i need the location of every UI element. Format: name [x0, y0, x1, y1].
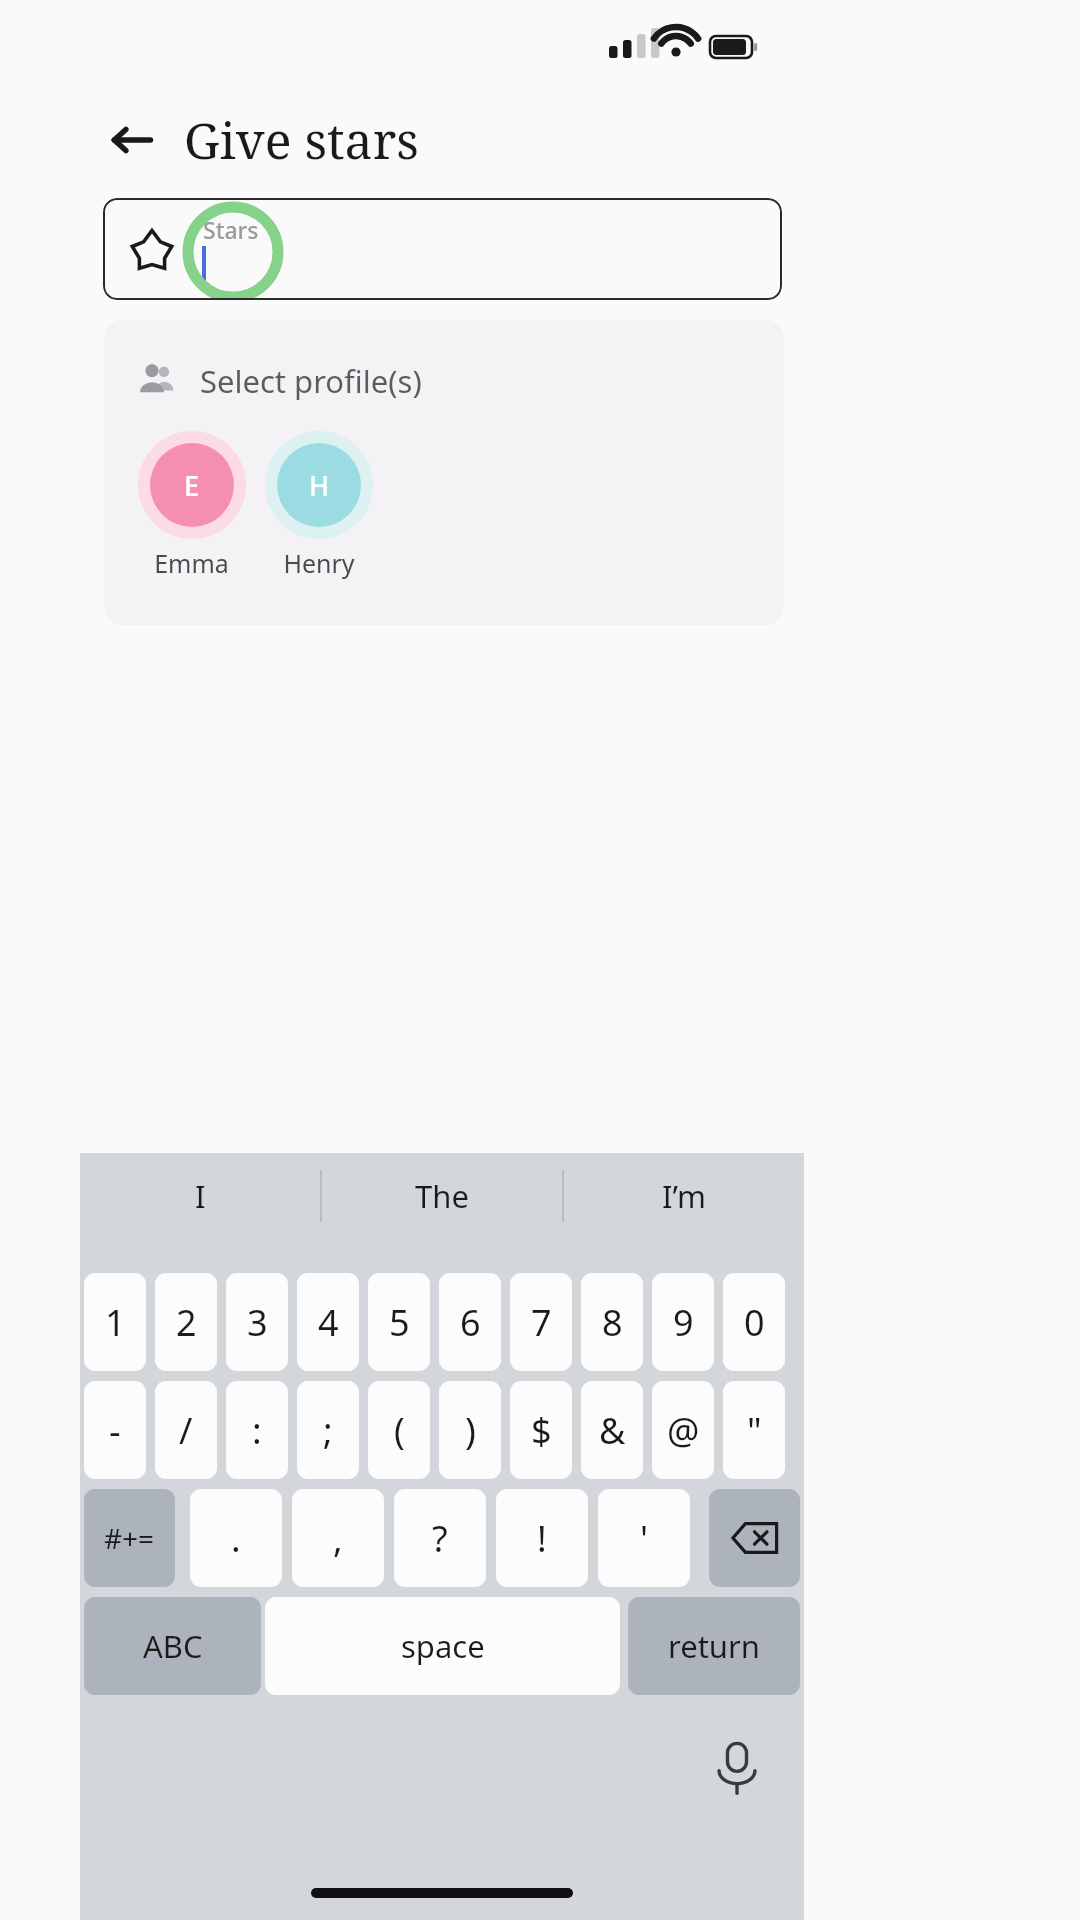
- staticText: Give stars: [184, 106, 419, 174]
- button[interactable]: 2: [155, 1273, 217, 1371]
- staticText: H: [309, 467, 330, 504]
- button[interactable]: return: [628, 1597, 800, 1695]
- button[interactable]: &: [581, 1381, 643, 1479]
- staticText: !: [537, 1514, 547, 1563]
- button[interactable]: E: [128, 426, 255, 580]
- button[interactable]: 5: [368, 1273, 430, 1371]
- staticText: space: [401, 1625, 485, 1667]
- staticText: Stars: [203, 214, 259, 245]
- button[interactable]: (: [368, 1381, 430, 1479]
- button[interactable]: !: [496, 1489, 588, 1587]
- staticText: ,: [333, 1514, 343, 1563]
- button[interactable]: /: [155, 1381, 217, 1479]
- staticText: ): [465, 1406, 476, 1455]
- staticText: 2: [176, 1298, 197, 1347]
- staticText: 9: [673, 1298, 694, 1347]
- button[interactable]: The: [322, 1153, 562, 1238]
- staticText: $: [531, 1406, 552, 1455]
- button[interactable]: 9: [652, 1273, 714, 1371]
- staticText: 5: [389, 1298, 410, 1347]
- button[interactable]: Back: [100, 108, 164, 172]
- staticText: I: [195, 1175, 206, 1217]
- staticText: I’m: [662, 1175, 706, 1217]
- button[interactable]: -: [84, 1381, 146, 1479]
- staticText: ;: [323, 1406, 333, 1455]
- staticText: 1: [105, 1298, 126, 1347]
- staticText: (: [394, 1406, 405, 1455]
- button[interactable]: ABC: [84, 1597, 261, 1695]
- staticText: :: [252, 1406, 262, 1455]
- staticText: The: [415, 1175, 469, 1217]
- button[interactable]: Stars: [103, 198, 782, 300]
- staticText: ABC: [143, 1625, 203, 1667]
- button[interactable]: ": [723, 1381, 785, 1479]
- button[interactable]: Backspace: [709, 1489, 800, 1587]
- staticText: /: [179, 1406, 193, 1455]
- button[interactable]: ,: [292, 1489, 384, 1587]
- staticText: 4: [318, 1298, 339, 1347]
- button[interactable]: 4: [297, 1273, 359, 1371]
- staticText: return: [668, 1625, 760, 1667]
- button[interactable]: .: [190, 1489, 282, 1587]
- staticText: -: [109, 1406, 121, 1455]
- staticText: ?: [432, 1514, 448, 1563]
- button[interactable]: 8: [581, 1273, 643, 1371]
- staticText: 0: [744, 1298, 765, 1347]
- button[interactable]: $: [510, 1381, 572, 1479]
- button[interactable]: 6: [439, 1273, 501, 1371]
- staticText: &: [599, 1406, 626, 1455]
- staticText: .: [231, 1514, 241, 1563]
- button[interactable]: :: [226, 1381, 288, 1479]
- button[interactable]: ;: [297, 1381, 359, 1479]
- staticText: @: [667, 1406, 700, 1455]
- staticText: #+=: [104, 1519, 155, 1557]
- button[interactable]: @: [652, 1381, 714, 1479]
- staticText: Select profile(s): [200, 360, 422, 402]
- staticText: 6: [460, 1298, 481, 1347]
- staticText: ': [640, 1514, 649, 1563]
- button[interactable]: ): [439, 1381, 501, 1479]
- staticText: E: [184, 467, 200, 504]
- button[interactable]: 7: [510, 1273, 572, 1371]
- staticText: Emma: [154, 546, 229, 580]
- staticText: 3: [247, 1298, 268, 1347]
- button[interactable]: H: [255, 426, 382, 580]
- staticText: 7: [531, 1298, 552, 1347]
- staticText: 8: [602, 1298, 623, 1347]
- staticText: Henry: [283, 546, 355, 580]
- button[interactable]: 1: [84, 1273, 146, 1371]
- staticText: ": [747, 1406, 762, 1455]
- button[interactable]: space: [265, 1597, 620, 1695]
- button[interactable]: #+=: [84, 1489, 175, 1587]
- button[interactable]: ?: [394, 1489, 486, 1587]
- button[interactable]: ': [598, 1489, 690, 1587]
- button[interactable]: I’m: [564, 1153, 804, 1238]
- button[interactable]: 0: [723, 1273, 785, 1371]
- button[interactable]: 3: [226, 1273, 288, 1371]
- button[interactable]: I: [80, 1153, 320, 1238]
- button[interactable]: Voice input: [692, 1723, 782, 1813]
